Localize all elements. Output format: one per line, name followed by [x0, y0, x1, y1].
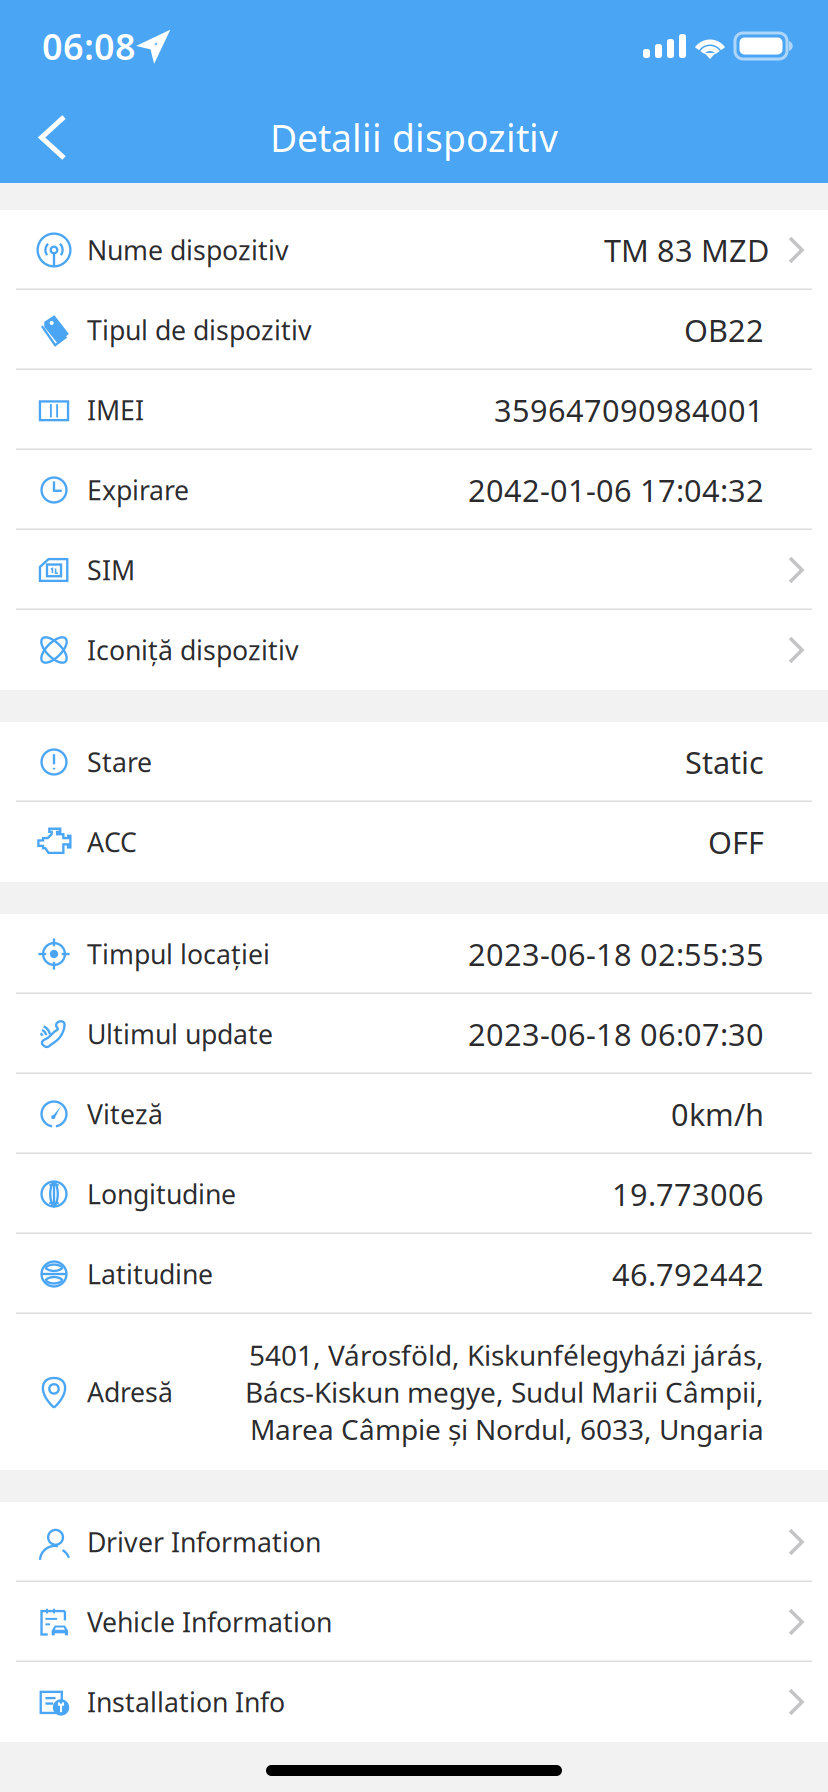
staticText: Nume dispozitiv [87, 232, 289, 268]
button[interactable]: Stare [0, 722, 828, 802]
staticText: Installation Info [87, 1684, 285, 1720]
button[interactable]: Latitudine [0, 1234, 828, 1314]
staticText: OB22 [684, 310, 764, 350]
button[interactable]: Tipul de dispozitiv [0, 290, 828, 370]
button[interactable]: Back [0, 92, 93, 183]
button[interactable]: Installation Info [0, 1662, 828, 1742]
button[interactable]: Iconiță dispozitiv [0, 610, 828, 690]
staticText: 359647090984001 [494, 390, 764, 430]
staticText: 2042-01-06 17:04:32 [468, 470, 764, 510]
button[interactable]: Nume dispozitiv [0, 210, 828, 290]
staticText: Vehicle Information [87, 1604, 332, 1640]
staticText: TM 83 MZD [604, 230, 769, 270]
staticText: OFF [708, 822, 764, 862]
staticText: Expirare [87, 472, 189, 508]
button[interactable]: Driver Information [0, 1502, 828, 1582]
staticText: SIM [87, 552, 135, 588]
button[interactable]: Expirare [0, 450, 828, 530]
staticText: 0km/h [671, 1094, 764, 1134]
staticText: Bács-Kiskun megye, Sudul Marii Câmpii, [245, 1373, 764, 1411]
staticText: Detalii dispozitiv [270, 113, 558, 162]
button[interactable]: Vehicle Information [0, 1582, 828, 1662]
staticText: 06:08 [42, 22, 136, 70]
staticText: Iconiță dispozitiv [87, 632, 299, 668]
button[interactable]: Ultimul update [0, 994, 828, 1074]
staticText: 19.773006 [612, 1174, 764, 1214]
staticText: Latitudine [87, 1256, 213, 1292]
staticText: 2023-06-18 02:55:35 [468, 934, 764, 974]
staticText: Marea Câmpie și Nordul, 6033, Ungaria [250, 1411, 764, 1448]
staticText: Static [685, 742, 764, 782]
button[interactable]: SIM [0, 530, 828, 610]
staticText: Driver Information [87, 1524, 321, 1560]
staticText: Adresă [87, 1374, 173, 1410]
staticText: ACC [87, 824, 137, 860]
staticText: Timpul locației [87, 936, 270, 972]
staticText: IMEI [87, 392, 144, 428]
staticText: Viteză [87, 1096, 163, 1132]
staticText: Ultimul update [87, 1016, 273, 1052]
button[interactable]: IMEI [0, 370, 828, 450]
staticText: Longitudine [87, 1176, 236, 1212]
button[interactable]: Adresă [0, 1314, 828, 1470]
staticText: 5401, Városföld, Kiskunfélegyházi járás, [249, 1336, 764, 1373]
button[interactable]: ACC [0, 802, 828, 882]
staticText: Stare [87, 744, 152, 780]
button[interactable]: Timpul locației [0, 914, 828, 994]
staticText: Tipul de dispozitiv [87, 312, 312, 348]
staticText: 2023-06-18 06:07:30 [468, 1014, 764, 1054]
button[interactable]: Viteză [0, 1074, 828, 1154]
button[interactable]: Longitudine [0, 1154, 828, 1234]
staticText: 46.792442 [612, 1254, 764, 1294]
